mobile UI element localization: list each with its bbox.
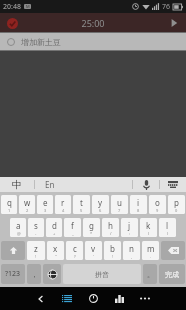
button[interactable]: c bbox=[66, 241, 83, 260]
button[interactable]: More options bbox=[132, 287, 158, 310]
button[interactable]: Switch language bbox=[43, 264, 61, 284]
staticText: u bbox=[117, 197, 122, 208]
staticText: " bbox=[55, 254, 57, 259]
staticText: l bbox=[166, 220, 169, 231]
button[interactable]: m bbox=[142, 241, 159, 260]
staticText: ?123 bbox=[5, 269, 21, 279]
button[interactable]: Keyboard settings bbox=[160, 177, 186, 192]
staticText: w bbox=[24, 197, 31, 208]
staticText: 拼音 bbox=[95, 270, 109, 279]
staticText: * bbox=[90, 231, 93, 236]
button[interactable]: Voice input bbox=[133, 177, 159, 192]
staticText: z bbox=[34, 243, 38, 254]
button[interactable]: o bbox=[149, 195, 166, 214]
staticText: d bbox=[52, 220, 57, 231]
staticText: 9 bbox=[156, 208, 159, 213]
staticText: v bbox=[91, 243, 96, 254]
button[interactable]: Backspace bbox=[161, 241, 185, 260]
staticText: j bbox=[128, 220, 131, 231]
button[interactable]: u bbox=[111, 195, 128, 214]
staticText: En bbox=[45, 179, 55, 190]
staticText: 7 bbox=[118, 208, 121, 213]
staticText: 25:00 bbox=[81, 17, 105, 29]
staticText: ? bbox=[74, 254, 76, 259]
staticText: 中 bbox=[12, 178, 22, 191]
button[interactable]: 。 bbox=[143, 264, 157, 284]
button[interactable]: d bbox=[46, 218, 62, 237]
staticText: t bbox=[80, 197, 83, 208]
staticText: ( bbox=[148, 231, 150, 236]
button[interactable]: i bbox=[130, 195, 147, 214]
staticText: k bbox=[146, 220, 151, 231]
staticText: c bbox=[73, 243, 77, 254]
button[interactable]: En bbox=[35, 177, 132, 192]
button[interactable]: x bbox=[47, 241, 64, 260]
button[interactable]: Back bbox=[28, 287, 54, 310]
staticText: f bbox=[71, 220, 74, 231]
staticText: . bbox=[150, 254, 152, 259]
staticText: b bbox=[110, 243, 115, 254]
button[interactable]: y bbox=[92, 195, 109, 214]
button[interactable]: l bbox=[159, 218, 176, 237]
button[interactable]: j bbox=[121, 218, 138, 237]
staticText: e bbox=[43, 197, 48, 208]
button[interactable]: g bbox=[83, 218, 100, 237]
button[interactable]: b bbox=[104, 241, 121, 260]
button[interactable]: 中 bbox=[0, 177, 34, 192]
staticText: ' bbox=[93, 254, 94, 259]
button[interactable]: ， bbox=[27, 264, 41, 284]
staticText: ， bbox=[31, 270, 38, 279]
staticText: n bbox=[129, 243, 134, 254]
button[interactable]: k bbox=[140, 218, 157, 237]
button[interactable]: n bbox=[123, 241, 140, 260]
button[interactable]: w bbox=[19, 195, 35, 214]
button[interactable]: 拼音 bbox=[63, 264, 141, 284]
button[interactable]: r bbox=[55, 195, 71, 214]
staticText: 4 bbox=[62, 208, 65, 213]
staticText: h bbox=[108, 220, 113, 231]
staticText: 2 bbox=[26, 208, 29, 213]
button[interactable]: Statistics bbox=[106, 287, 132, 310]
staticText: ) bbox=[167, 231, 169, 236]
button[interactable]: q bbox=[1, 195, 17, 214]
button[interactable]: 增加新土豆 bbox=[0, 33, 186, 50]
button[interactable]: e bbox=[37, 195, 53, 214]
staticText: o bbox=[155, 197, 160, 208]
staticText: y bbox=[98, 197, 103, 208]
staticText: _ bbox=[72, 231, 74, 236]
button[interactable]: ?123 bbox=[1, 264, 25, 284]
button[interactable]: Timer bbox=[80, 287, 106, 310]
button[interactable]: z bbox=[27, 241, 45, 260]
button[interactable]: t bbox=[73, 195, 90, 214]
button[interactable]: s bbox=[28, 218, 44, 237]
staticText: x bbox=[53, 243, 58, 254]
button[interactable]: Shift bbox=[1, 241, 25, 260]
staticText: a bbox=[16, 220, 21, 231]
staticText: , bbox=[131, 254, 133, 259]
button[interactable]: h bbox=[102, 218, 119, 237]
staticText: 6 bbox=[99, 208, 102, 213]
button[interactable]: a bbox=[10, 218, 26, 237]
button[interactable]: Pomodoro bbox=[5, 16, 19, 30]
button[interactable]: 完成 bbox=[159, 264, 185, 284]
staticText: 76 bbox=[162, 2, 171, 12]
staticText: g bbox=[89, 220, 94, 231]
button[interactable]: Task list bbox=[54, 287, 80, 310]
staticText: 20:48 bbox=[3, 2, 21, 12]
staticText: + bbox=[53, 231, 56, 236]
staticText: 3 bbox=[44, 208, 47, 213]
staticText: 5 bbox=[80, 208, 83, 213]
staticText: M bbox=[26, 4, 30, 9]
button[interactable]: f bbox=[64, 218, 81, 237]
staticText: 完成 bbox=[165, 270, 179, 279]
staticText: - bbox=[35, 231, 37, 236]
staticText: 8 bbox=[137, 208, 140, 213]
button[interactable]: v bbox=[85, 241, 102, 260]
staticText: 。 bbox=[147, 270, 154, 279]
staticText: s bbox=[34, 220, 38, 231]
staticText: 1 bbox=[8, 208, 11, 213]
button[interactable]: p bbox=[168, 195, 185, 214]
staticText: 增加新土豆 bbox=[21, 37, 61, 47]
button[interactable]: Start timer bbox=[167, 16, 181, 30]
staticText: m bbox=[147, 243, 155, 254]
